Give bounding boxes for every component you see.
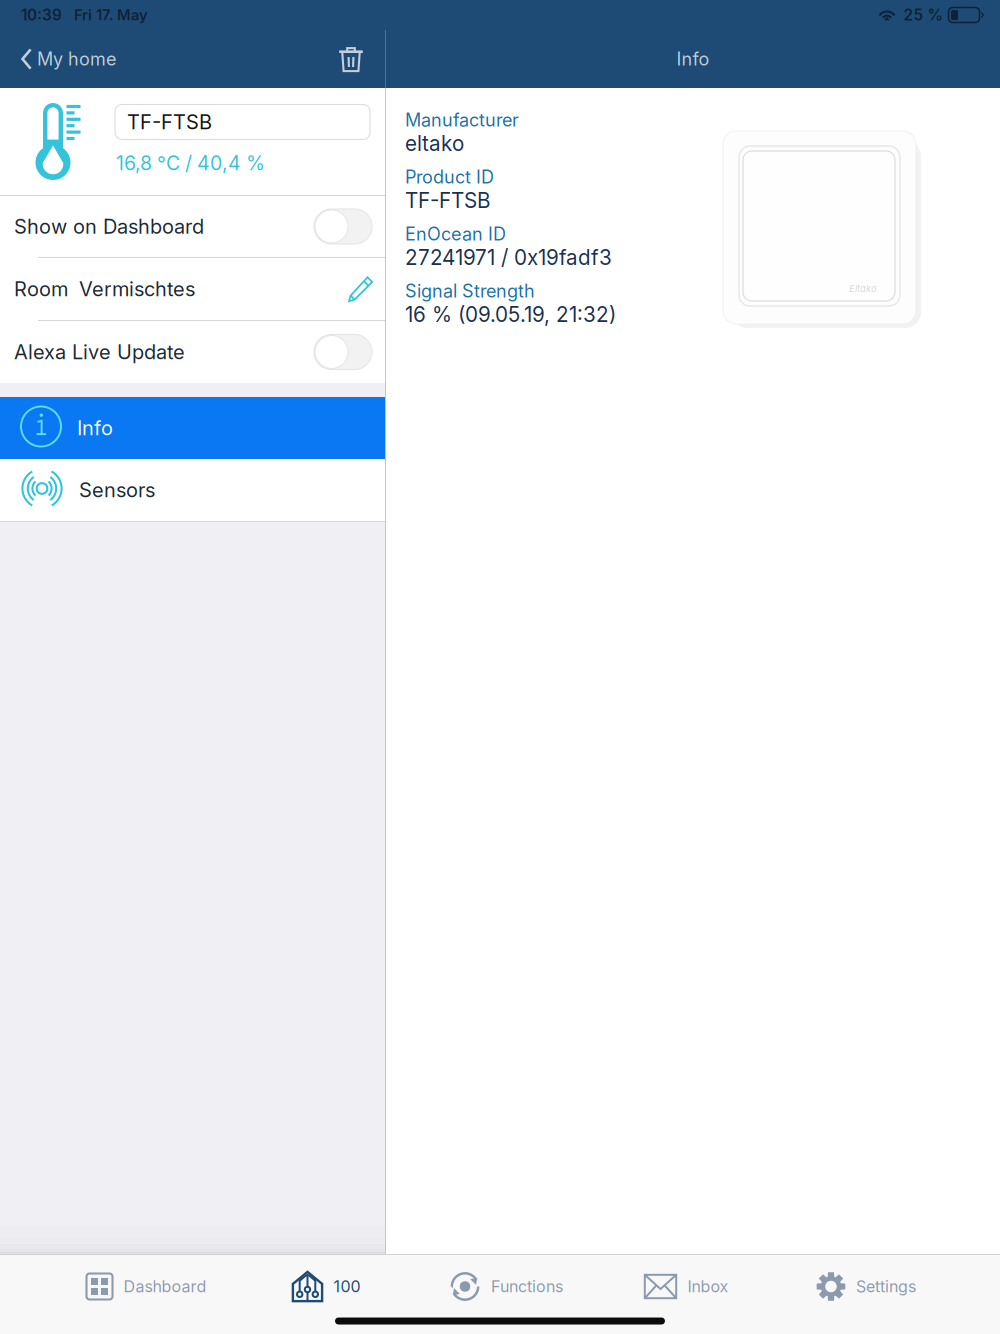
staticText: 16 % (09.05.19, 21:32) [405, 302, 616, 327]
button[interactable]: Alexa Live Update [0, 321, 385, 383]
staticText: TF-FTSB [127, 110, 212, 134]
button[interactable]: Show on Dashboard [0, 196, 385, 258]
staticText: eltako [405, 131, 464, 156]
staticText: Show on Dashboard [14, 214, 204, 239]
button[interactable]: 100 [236, 1259, 416, 1313]
staticText: 27241971 / 0x19fadf3 [405, 245, 612, 270]
staticText: Dashboard [123, 1277, 206, 1296]
staticText: 16,8 °C / 40,4 % [116, 151, 265, 175]
staticText: Sensors [79, 478, 155, 502]
staticText: 10:39 [21, 6, 62, 24]
button[interactable]: My home [0, 30, 126, 88]
staticText: Vermischtes [79, 277, 195, 301]
staticText: Functions [491, 1277, 563, 1296]
button[interactable]: Info [0, 397, 385, 459]
button[interactable]: Settings [776, 1259, 956, 1313]
staticText: Room [14, 277, 68, 301]
staticText: 100 [333, 1277, 360, 1296]
button[interactable]: Delete [317, 30, 385, 88]
staticText: EnOcean ID [405, 223, 506, 245]
staticText: TF-FTSB [405, 188, 490, 213]
staticText: My home [37, 48, 116, 70]
staticText: Eltako [849, 283, 877, 294]
staticText: Settings [856, 1277, 916, 1296]
button[interactable]: Inbox [596, 1259, 776, 1313]
staticText: Info [676, 48, 709, 70]
staticText: Fri 17. May [74, 6, 148, 24]
staticText: 25 % [903, 6, 942, 24]
staticText: Info [77, 416, 113, 440]
staticText: Manufacturer [405, 109, 519, 131]
button[interactable]: Functions [416, 1259, 596, 1313]
staticText: Inbox [687, 1277, 728, 1296]
button[interactable]: Room [0, 258, 385, 321]
staticText: Alexa Live Update [14, 340, 185, 364]
button[interactable]: Sensors [0, 459, 385, 521]
button[interactable]: Dashboard [56, 1259, 236, 1313]
staticText: Signal Strength [405, 280, 535, 302]
staticText: Product ID [405, 166, 494, 188]
